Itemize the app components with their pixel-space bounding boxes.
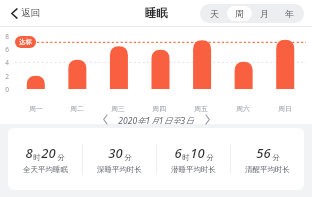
staticText: 清醒平均时长 <box>245 165 290 174</box>
staticText: 2020年1月1日至3日 <box>118 115 194 124</box>
button[interactable]: 30 <box>83 128 156 190</box>
button[interactable]: 6 <box>157 128 230 190</box>
button[interactable]: 返回 <box>9 4 42 22</box>
staticText: 周六 <box>236 104 250 113</box>
staticText: 年 <box>285 8 294 19</box>
staticText: 时 <box>33 153 41 162</box>
staticText: 睡眠 <box>145 6 168 20</box>
staticText: 4 <box>5 58 9 67</box>
button[interactable]: Next week <box>200 115 214 124</box>
button[interactable]: 周 <box>227 6 252 21</box>
staticText: 周一 <box>29 104 43 113</box>
button[interactable]: 月 <box>252 6 277 21</box>
staticText: 分 <box>206 153 214 162</box>
staticText: 2 <box>5 72 9 81</box>
staticText: 潜睡平均时长 <box>171 165 216 174</box>
button[interactable]: Previous week <box>98 115 112 124</box>
staticText: 分 <box>57 153 65 162</box>
staticText: 天 <box>210 8 219 19</box>
staticText: 6 <box>5 45 9 54</box>
staticText: 30 <box>108 144 123 162</box>
staticText: 6 <box>174 144 182 162</box>
button[interactable]: 年 <box>277 6 302 21</box>
button[interactable]: 天 <box>202 6 227 21</box>
staticText: 周四 <box>152 104 166 113</box>
staticText: 周五 <box>194 104 208 113</box>
button[interactable]: 8 <box>8 128 82 190</box>
staticText: 20 <box>41 144 56 162</box>
button[interactable]: 56 <box>231 128 304 190</box>
staticText: 8 <box>25 144 33 162</box>
staticText: 周日 <box>278 104 292 113</box>
staticText: 周 <box>235 8 244 19</box>
staticText: 0 <box>5 85 9 94</box>
staticText: 周二 <box>70 104 84 113</box>
staticText: 返回 <box>21 7 40 19</box>
staticText: 周三 <box>111 104 125 113</box>
staticText: 8 <box>5 32 9 41</box>
staticText: 分 <box>124 153 132 162</box>
staticText: 分 <box>272 153 280 162</box>
staticText: 月 <box>260 8 269 19</box>
staticText: 全天平均睡眠 <box>23 165 68 174</box>
staticText: 10 <box>190 144 205 162</box>
staticText: 达标 <box>19 38 32 46</box>
staticText: 56 <box>256 144 271 162</box>
staticText: 时 <box>182 153 190 162</box>
staticText: 深睡平均时长 <box>97 165 142 174</box>
